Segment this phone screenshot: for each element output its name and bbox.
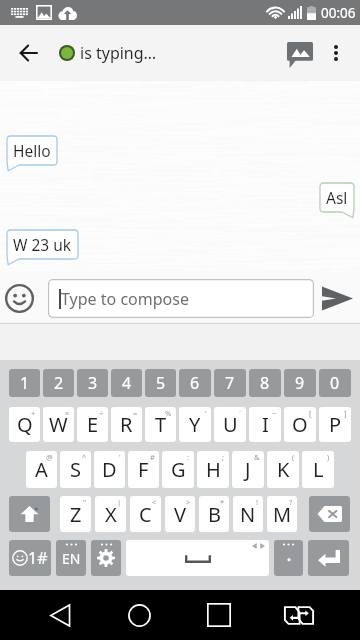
button[interactable]: P <box>319 407 351 442</box>
staticText: M <box>273 501 292 528</box>
button[interactable]: Shift <box>9 496 50 532</box>
button[interactable]: J <box>232 451 264 488</box>
button[interactable]: Recent apps <box>179 590 259 640</box>
staticText: ' <box>205 408 207 418</box>
staticText: Asl <box>326 187 348 208</box>
staticText: X <box>105 501 117 528</box>
staticText: B <box>208 501 221 528</box>
button[interactable]: W 23 uk <box>7 230 78 265</box>
button[interactable]: EN <box>56 540 86 576</box>
staticText: 9 <box>295 372 305 394</box>
button[interactable]: Y <box>179 407 211 442</box>
staticText: U <box>223 411 238 438</box>
button[interactable]: L <box>302 451 334 488</box>
staticText: # <box>150 452 155 462</box>
button[interactable]: Enter <box>308 540 349 576</box>
staticText: × <box>65 408 70 418</box>
button[interactable]: Split screen <box>259 590 339 640</box>
staticText: 8 <box>260 372 270 394</box>
button[interactable]: V <box>165 496 195 532</box>
button[interactable]: 7 <box>214 369 246 397</box>
staticText: : <box>187 452 190 462</box>
button[interactable]: Backspace <box>309 496 350 532</box>
staticText: 2 <box>54 372 64 394</box>
staticText: & <box>254 452 260 462</box>
button[interactable]: 9 <box>284 369 316 397</box>
staticText: K <box>277 456 290 483</box>
staticText: > <box>186 497 191 507</box>
button[interactable]: X <box>95 496 126 532</box>
button[interactable]: S <box>60 451 91 488</box>
button[interactable]: Z <box>60 496 91 532</box>
button[interactable]: 6 <box>179 369 211 397</box>
staticText: ` <box>239 408 242 418</box>
button[interactable]: Attach image <box>264 25 312 81</box>
staticText: H <box>206 456 221 483</box>
staticText: 7 <box>225 372 235 394</box>
button[interactable]: 0 <box>319 369 351 397</box>
staticText: < <box>152 497 157 507</box>
button[interactable]: Type to compose <box>48 279 314 318</box>
button[interactable]: Keyboard settings <box>91 540 121 576</box>
button[interactable]: is typing… <box>56 25 264 81</box>
button[interactable]: Asl <box>320 183 354 218</box>
button[interactable]: C <box>130 496 161 532</box>
staticText: | <box>117 497 122 507</box>
button[interactable]: I <box>249 407 281 442</box>
button[interactable]: F <box>128 451 159 488</box>
button[interactable]: M <box>267 496 297 532</box>
button[interactable]: 8 <box>249 369 281 397</box>
button[interactable]: U <box>214 407 246 442</box>
staticText: 1 <box>20 372 30 394</box>
button[interactable]: Hello <box>7 136 57 171</box>
button[interactable] <box>274 540 303 576</box>
staticText: Hello <box>13 140 51 161</box>
button[interactable]: A <box>26 451 57 488</box>
staticText: P <box>329 411 342 438</box>
button[interactable]: H <box>197 451 229 488</box>
button[interactable]: R <box>111 407 142 442</box>
button[interactable]: E <box>77 407 108 442</box>
button[interactable]: Home <box>100 590 179 640</box>
button[interactable]: T <box>145 407 176 442</box>
staticText: EN <box>62 549 81 568</box>
button[interactable]: Q <box>9 407 40 442</box>
staticText: " <box>83 497 87 507</box>
button[interactable]: D <box>94 451 125 488</box>
button[interactable]: 4 <box>111 369 142 397</box>
staticText: ) <box>327 452 330 462</box>
staticText: ( <box>292 452 295 462</box>
button[interactable]: N <box>233 496 263 532</box>
staticText: N <box>240 501 256 528</box>
staticText: C <box>139 501 152 528</box>
staticText: R <box>120 411 133 438</box>
button[interactable]: Back <box>0 25 56 81</box>
button[interactable]: 3 <box>77 369 108 397</box>
button[interactable]: 1 <box>9 369 40 397</box>
button[interactable]: O <box>284 407 316 442</box>
staticText: ] <box>344 408 347 418</box>
staticText: T <box>155 411 167 438</box>
staticText: ? <box>289 497 293 507</box>
staticText: F <box>138 456 149 483</box>
button[interactable]: More options <box>312 25 360 81</box>
button[interactable]: B <box>199 496 229 532</box>
button[interactable]: Send <box>314 272 360 324</box>
button[interactable]: 1# <box>9 540 51 576</box>
staticText: L <box>313 456 324 483</box>
staticText: ' <box>119 452 121 462</box>
button[interactable]: W <box>43 407 74 442</box>
staticText: 00:06 <box>321 4 356 22</box>
button[interactable]: 5 <box>145 369 176 397</box>
staticText: ~ <box>272 408 277 418</box>
staticText: = <box>133 408 138 418</box>
button[interactable]: G <box>162 451 194 488</box>
staticText: Z <box>70 501 82 528</box>
button[interactable]: Emoji <box>0 272 48 324</box>
staticText: 0 <box>330 372 340 394</box>
button[interactable]: Space <box>126 540 269 576</box>
button[interactable]: K <box>267 451 299 488</box>
staticText: ^ <box>82 452 87 462</box>
button[interactable]: 2 <box>43 369 74 397</box>
button[interactable]: Back <box>21 590 100 640</box>
